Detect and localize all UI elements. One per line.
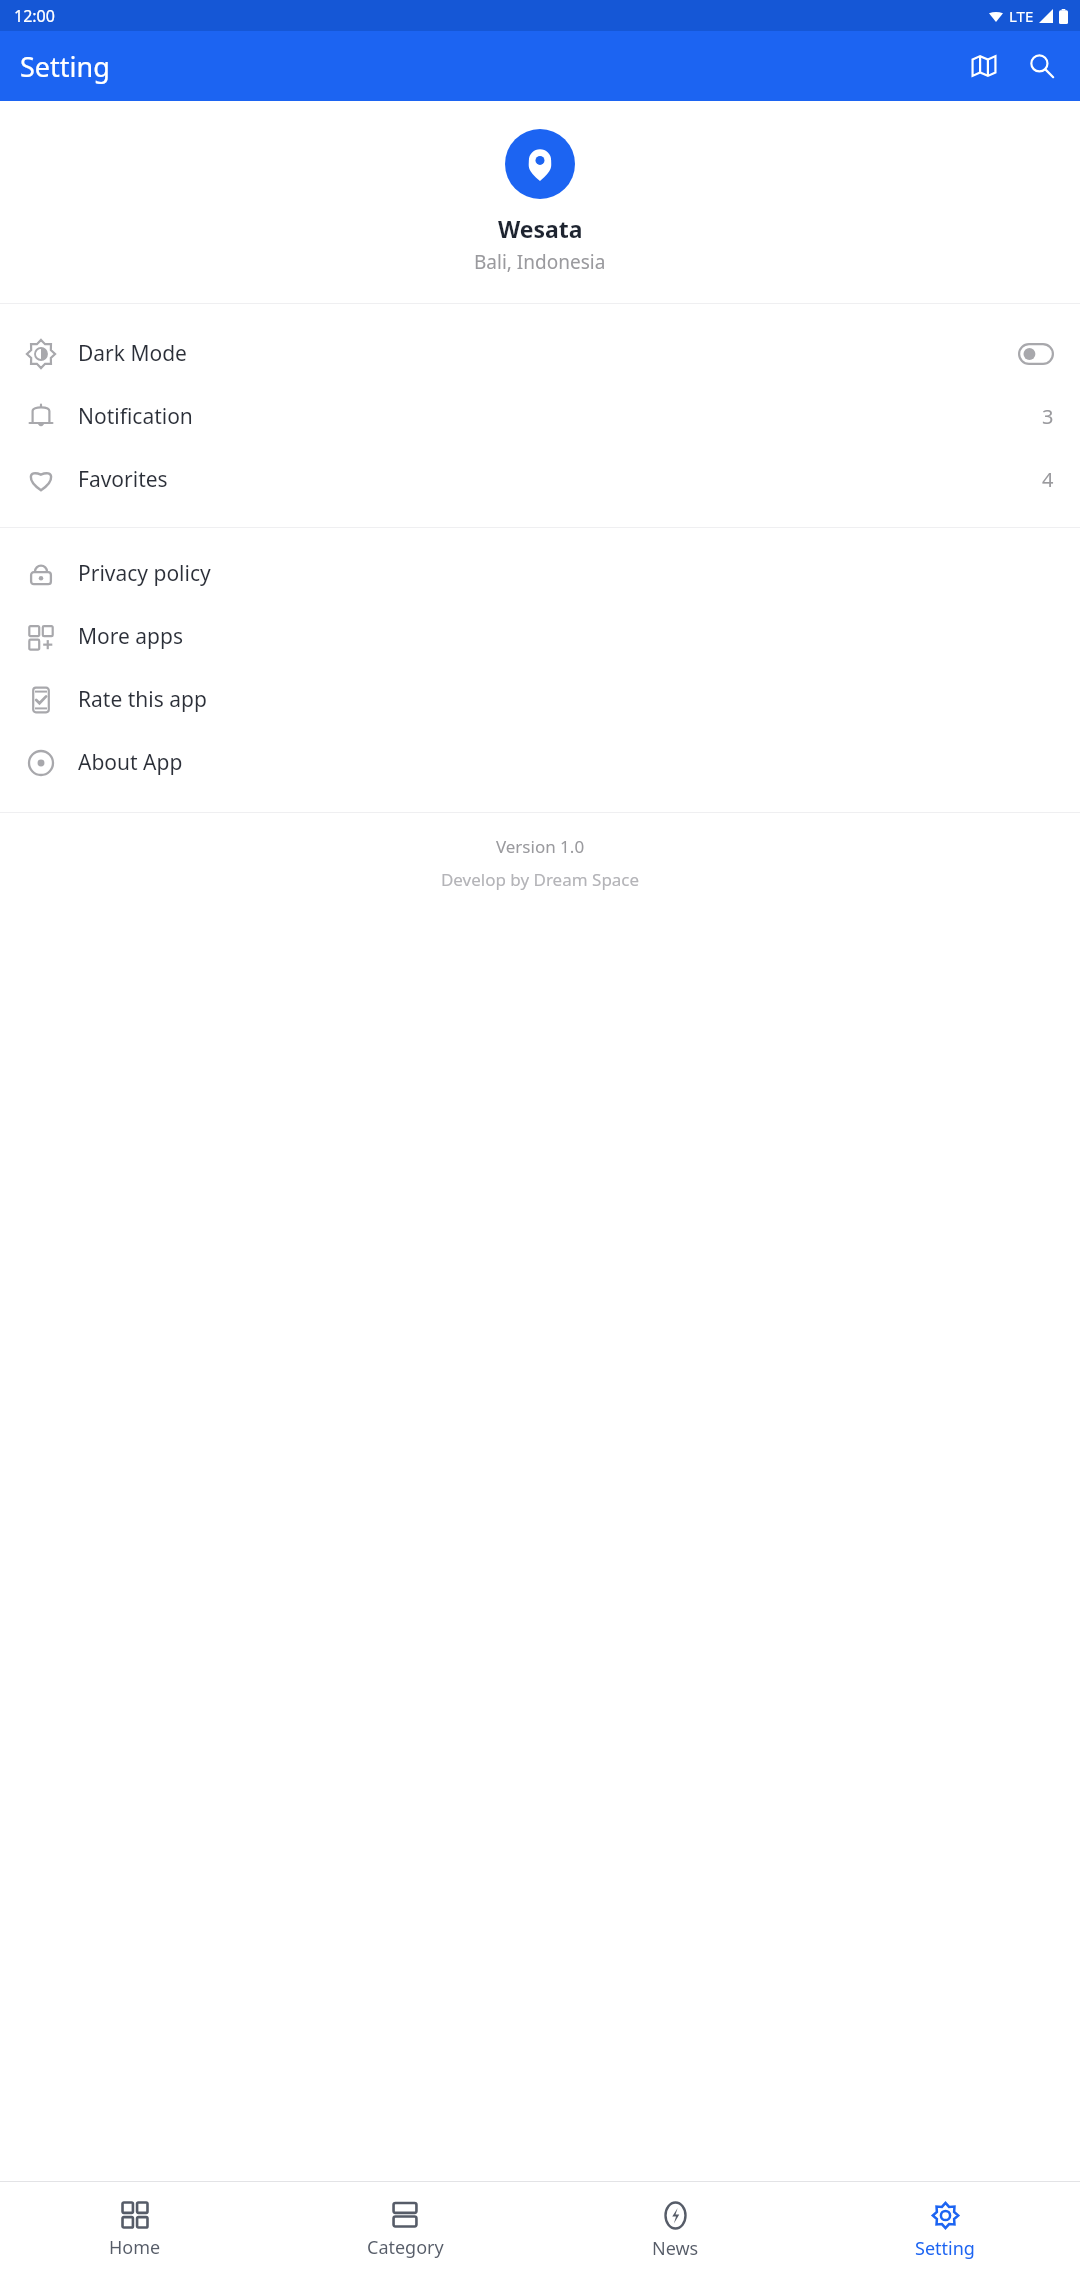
button[interactable]: More apps	[0, 605, 1080, 668]
button[interactable]: News	[540, 2182, 810, 2280]
staticText: Version 1.0	[0, 835, 1080, 858]
button[interactable]: Dark Mode	[0, 322, 1080, 385]
button[interactable]: About App	[0, 731, 1080, 794]
staticText: 3	[1042, 403, 1054, 430]
staticText: Bali, Indonesia	[474, 249, 606, 275]
staticText: Setting	[915, 2236, 975, 2261]
button[interactable]: Category	[270, 2182, 540, 2280]
staticText: LTE	[1009, 6, 1034, 26]
staticText: News	[652, 2236, 699, 2261]
staticText: Dark Mode	[78, 339, 187, 368]
staticText: Rate this app	[78, 685, 207, 714]
staticText: Privacy policy	[78, 559, 211, 588]
button[interactable]: Setting	[810, 2182, 1080, 2280]
staticText: About App	[78, 748, 183, 777]
button[interactable]: Map	[960, 42, 1008, 90]
button[interactable]: Rate this app	[0, 668, 1080, 731]
staticText: Wesata	[498, 213, 583, 244]
staticText: Favorites	[78, 465, 168, 494]
staticText: Setting	[20, 48, 110, 85]
button[interactable]: Favorites	[0, 448, 1080, 511]
staticText: Category	[367, 2235, 444, 2260]
button[interactable]: Notification	[0, 385, 1080, 448]
button[interactable]: Privacy policy	[0, 542, 1080, 605]
staticText: Home	[109, 2235, 161, 2260]
button[interactable]: Search	[1018, 42, 1066, 90]
staticText: 12:00	[14, 5, 55, 27]
staticText: More apps	[78, 622, 183, 651]
staticText: 4	[1042, 466, 1054, 493]
staticText: Develop by Dream Space	[0, 868, 1080, 891]
staticText: Notification	[78, 402, 193, 431]
button[interactable]: Home	[0, 2182, 270, 2280]
